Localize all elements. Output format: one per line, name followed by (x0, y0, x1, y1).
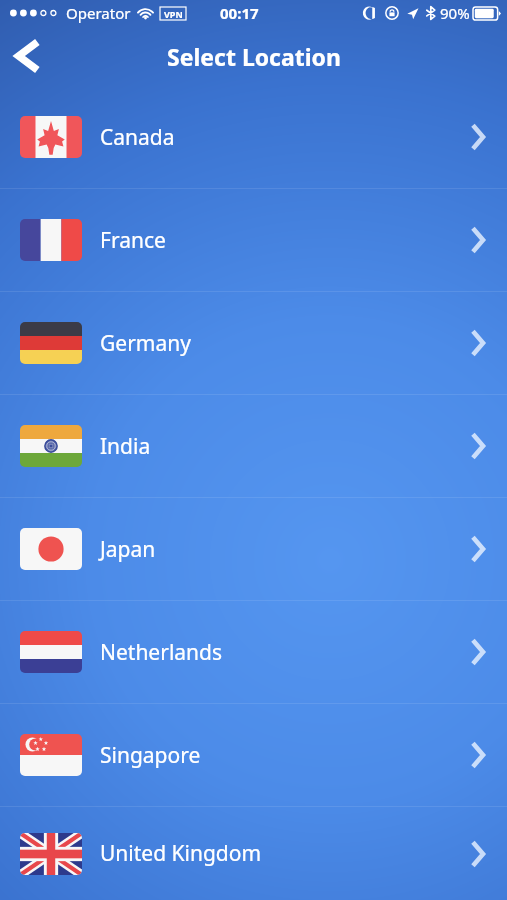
staticText: 00:17 (220, 3, 259, 23)
staticText: United Kingdom (100, 839, 262, 868)
button[interactable]: Netherlands (0, 601, 507, 703)
button[interactable]: Canada (0, 86, 507, 188)
staticText: France (100, 226, 166, 255)
staticText: Germany (100, 329, 191, 358)
staticText: 90% (440, 3, 470, 23)
staticText: Operator (66, 3, 131, 23)
button[interactable]: Singapore (0, 704, 507, 806)
button[interactable]: Back (0, 28, 56, 84)
staticText: Select Location (167, 41, 341, 72)
staticText: Netherlands (100, 638, 223, 667)
staticText: Singapore (100, 741, 201, 770)
staticText: Canada (100, 123, 175, 152)
button[interactable]: Germany (0, 292, 507, 394)
staticText: India (100, 432, 151, 461)
staticText: VPN (164, 8, 183, 20)
button[interactable]: France (0, 189, 507, 291)
staticText: Japan (100, 535, 156, 564)
button[interactable]: United Kingdom (0, 807, 507, 900)
button[interactable]: India (0, 395, 507, 497)
button[interactable]: Japan (0, 498, 507, 600)
